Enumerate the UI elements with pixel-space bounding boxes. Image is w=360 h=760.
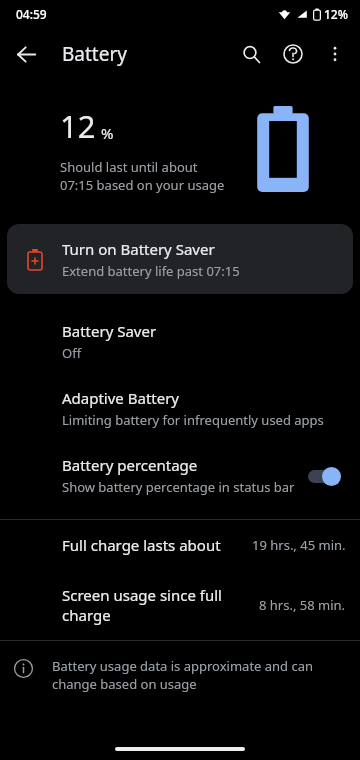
staticText: 12% [324, 6, 348, 22]
staticText: Extend battery life past 07:15 [62, 262, 240, 280]
staticText: 12 [60, 105, 96, 147]
staticText: 8 hrs., 58 min. [259, 596, 346, 614]
button[interactable]: Screen usage since full charge [0, 570, 360, 640]
button[interactable]: Adaptive Battery [0, 375, 360, 442]
button[interactable]: Battery percentage [0, 442, 360, 509]
staticText: 07:15 based on your usage [60, 176, 225, 194]
staticText: Battery [62, 41, 127, 67]
staticText: Full charge lasts about [62, 535, 252, 555]
staticText: 04:59 [16, 6, 47, 22]
staticText: Battery percentage [62, 455, 198, 475]
staticText: Screen usage since full charge [62, 585, 259, 625]
staticText: Battery Saver [62, 321, 157, 341]
staticText: % [101, 123, 114, 143]
staticText: Show battery percentage in status bar [62, 478, 295, 496]
staticText: Should last until about [60, 158, 198, 176]
button[interactable]: Full charge lasts about [0, 520, 360, 570]
staticText: Turn on Battery Saver [62, 239, 215, 259]
staticText: 19 hrs., 45 min. [252, 536, 346, 554]
button[interactable]: Back [6, 34, 46, 74]
staticText: Off [62, 344, 82, 362]
button[interactable]: Help [272, 33, 314, 75]
button[interactable]: Turn on Battery Saver [7, 224, 353, 294]
button[interactable]: Search [230, 33, 272, 75]
button[interactable]: More options [314, 33, 356, 75]
button[interactable]: Battery Saver [0, 308, 360, 375]
staticText: Battery usage data is approximate and ca… [52, 657, 336, 693]
staticText: Limiting battery for infrequently used a… [62, 411, 324, 429]
staticText: Adaptive Battery [62, 388, 180, 408]
